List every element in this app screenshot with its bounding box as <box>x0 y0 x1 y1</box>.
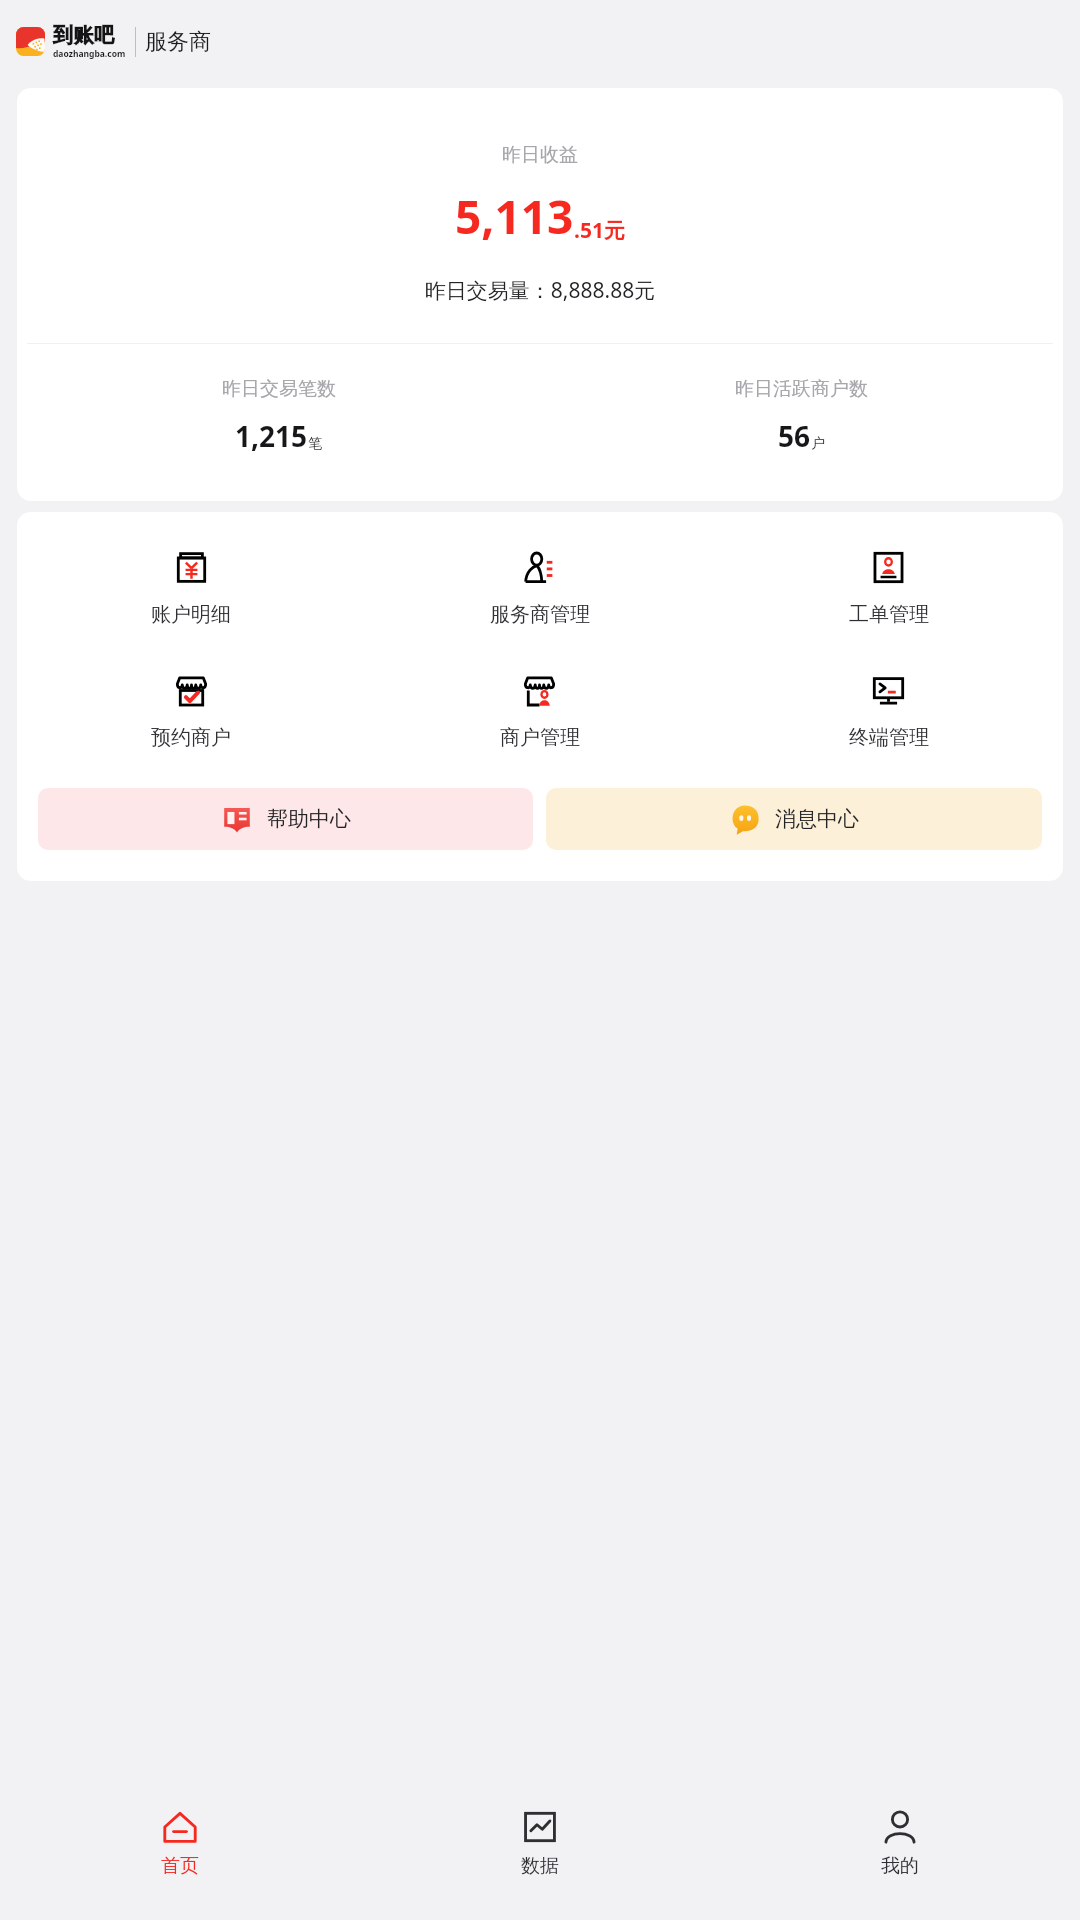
staticText: 到账吧 <box>53 23 115 48</box>
staticText: 昨日活跃商户数 <box>735 377 868 401</box>
staticText: daozhangba.com <box>53 48 126 60</box>
staticText: 1,215 <box>235 417 308 455</box>
button[interactable]: 数据 <box>360 1790 720 1920</box>
button[interactable]: 商户管理 <box>365 664 714 760</box>
staticText: 账户明细 <box>151 602 231 627</box>
button[interactable]: 消息中心 <box>546 788 1042 850</box>
staticText: 终端管理 <box>849 725 929 750</box>
staticText: 首页 <box>161 1854 199 1878</box>
button[interactable]: 账户明细 <box>17 541 365 637</box>
staticText: 户 <box>811 435 825 453</box>
staticText: .51元 <box>574 216 625 245</box>
button[interactable]: 终端管理 <box>714 664 1063 760</box>
staticText: 消息中心 <box>775 806 859 832</box>
button[interactable]: 我的 <box>720 1790 1080 1920</box>
staticText: 服务商 <box>145 28 211 56</box>
staticText: 56 <box>778 417 811 455</box>
staticText: 5,113 <box>455 185 574 248</box>
staticText: 我的 <box>881 1854 919 1878</box>
button[interactable]: 服务商管理 <box>365 541 714 637</box>
staticText: 服务商管理 <box>490 602 590 627</box>
button[interactable]: 首页 <box>0 1790 360 1920</box>
staticText: 预约商户 <box>151 725 231 750</box>
button[interactable]: 工单管理 <box>714 541 1063 637</box>
staticText: 帮助中心 <box>267 806 351 832</box>
staticText: 昨日交易笔数 <box>222 377 336 401</box>
staticText: 昨日收益 <box>17 143 1063 167</box>
staticText: 数据 <box>521 1854 559 1878</box>
button[interactable]: 预约商户 <box>17 664 365 760</box>
button[interactable]: 帮助中心 <box>38 788 533 850</box>
staticText: 昨日交易量：8,888.88元 <box>17 276 1063 305</box>
staticText: 工单管理 <box>849 602 929 627</box>
staticText: 商户管理 <box>500 725 580 750</box>
staticText: 笔 <box>308 435 322 453</box>
